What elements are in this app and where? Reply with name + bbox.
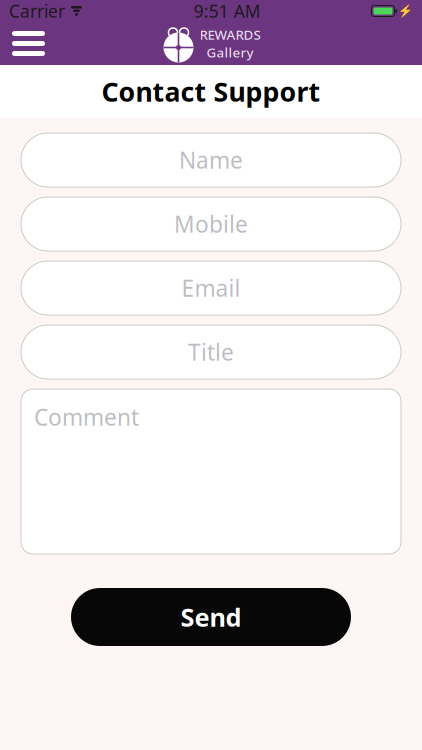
staticText: REWARDS [199, 26, 260, 43]
staticText: Carrier [9, 0, 65, 22]
staticText: Name [179, 145, 243, 175]
staticText: Comment [34, 402, 139, 432]
button[interactable]: Mobile [21, 197, 401, 251]
button[interactable]: Menu [0, 25, 57, 62]
staticText: Mobile [174, 209, 248, 239]
button[interactable]: Send [71, 588, 351, 646]
button[interactable]: Email [21, 261, 401, 315]
staticText: Title [188, 337, 234, 367]
staticText: Contact Support [101, 74, 320, 109]
staticText: ⚡ [398, 4, 413, 18]
button[interactable]: Title [21, 325, 401, 379]
staticText: Gallery [206, 43, 253, 61]
button[interactable]: Name [21, 133, 401, 187]
staticText: Send [180, 600, 241, 634]
button[interactable]: Comment [21, 389, 401, 554]
staticText: 9:51 AM [194, 0, 261, 22]
staticText: Email [181, 273, 240, 303]
